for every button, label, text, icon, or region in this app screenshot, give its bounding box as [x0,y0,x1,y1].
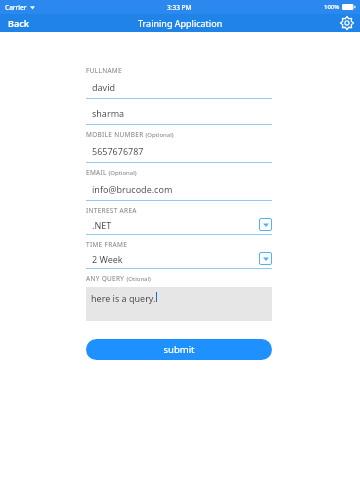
staticText: 2 Week [92,253,259,265]
staticText: here is a query. [91,292,156,304]
staticText: sharma [92,107,125,119]
staticText: info@brucode.com [92,183,173,195]
button[interactable]: here is a query. [86,287,272,321]
staticText: Training Application [138,17,223,29]
staticText: (Optional) [107,169,137,177]
button[interactable]: Select interest area [259,218,272,231]
staticText: (Otional) [125,275,151,283]
button[interactable]: Settings [340,14,354,32]
staticText: .NET [92,219,259,231]
staticText: Back [8,17,30,29]
staticText: 100% [324,3,340,11]
staticText: EMAIL [86,168,107,177]
staticText: 5657676787 [92,145,144,157]
staticText: TIME FRAME [86,240,128,249]
staticText: david [92,81,116,93]
staticText: ANY QUERY [86,274,125,283]
staticText: submit [163,343,195,356]
button[interactable]: submit [86,339,272,360]
staticText: MOBILE NUMBER [86,130,144,139]
button[interactable]: Select time frame [259,252,272,265]
staticText: 3:33 PM [167,3,192,12]
staticText: Carrier [5,3,27,12]
staticText: INTEREST AREA [86,206,137,215]
staticText: FULLNAME [86,66,122,75]
staticText: (Optional) [144,131,174,139]
button[interactable]: Back [8,14,30,32]
